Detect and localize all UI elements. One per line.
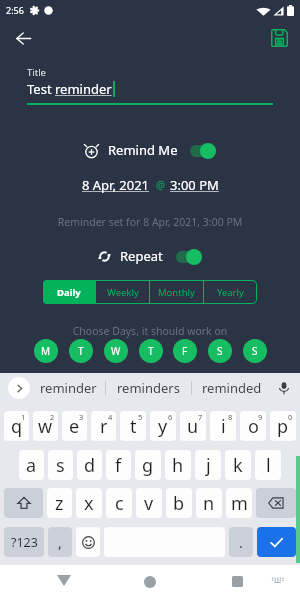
- staticText: h: [172, 453, 184, 478]
- button[interactable]: Save: [264, 23, 294, 53]
- button[interactable]: i: [210, 411, 236, 441]
- staticText: T: [148, 344, 154, 358]
- button[interactable]: m: [226, 488, 252, 518]
- button[interactable]: F: [173, 339, 197, 363]
- staticText: j: [206, 453, 211, 478]
- button[interactable]: Monthly: [150, 280, 203, 304]
- button[interactable]: T: [139, 339, 163, 363]
- staticText: Title: [27, 66, 46, 79]
- staticText: c: [115, 491, 124, 516]
- staticText: ?123: [11, 534, 38, 551]
- staticText: f: [115, 453, 122, 478]
- staticText: w: [38, 414, 53, 439]
- button[interactable]: d: [77, 450, 102, 480]
- staticText: reminder: [40, 379, 97, 397]
- button[interactable]: p: [270, 411, 296, 441]
- button[interactable]: e: [62, 411, 87, 441]
- staticText: 4: [108, 412, 113, 422]
- button[interactable]: t: [120, 411, 146, 441]
- staticText: g: [142, 453, 154, 478]
- staticText: l: [266, 453, 271, 478]
- button[interactable]: j: [195, 450, 221, 480]
- button[interactable]: 8 Apr, 2021: [82, 176, 150, 193]
- button[interactable]: reminded: [192, 373, 272, 402]
- button[interactable]: Recents: [222, 576, 252, 600]
- staticText: q: [11, 414, 23, 439]
- button[interactable]: More suggestions: [8, 377, 30, 399]
- button[interactable]: .: [229, 527, 253, 557]
- staticText: k: [233, 453, 243, 478]
- staticText: F: [182, 344, 188, 358]
- staticText: i: [221, 414, 226, 439]
- button[interactable]: g: [135, 450, 161, 480]
- button[interactable]: Back: [8, 23, 38, 53]
- button[interactable]: S: [243, 339, 267, 363]
- staticText: 1: [21, 412, 26, 422]
- button[interactable]: z: [47, 488, 72, 518]
- staticText: v: [144, 491, 154, 516]
- staticText: m: [231, 491, 248, 516]
- button[interactable]: x: [76, 488, 102, 518]
- button[interactable]: [189, 142, 216, 159]
- button[interactable]: f: [106, 450, 131, 480]
- staticText: r: [100, 414, 108, 439]
- button[interactable]: Yearly: [204, 280, 257, 304]
- button[interactable]: n: [196, 488, 222, 518]
- staticText: Remind Me: [108, 141, 178, 159]
- staticText: d: [84, 453, 96, 478]
- button[interactable]: Daily: [43, 280, 95, 304]
- button[interactable]: ?123: [4, 527, 44, 557]
- button[interactable]: ,: [48, 527, 72, 557]
- button[interactable]: W: [104, 339, 128, 363]
- button[interactable]: reminder: [32, 373, 105, 402]
- staticText: S: [252, 344, 258, 358]
- button[interactable]: S: [208, 339, 232, 363]
- staticText: S: [217, 344, 223, 358]
- button[interactable]: r: [91, 411, 116, 441]
- button[interactable]: l: [255, 450, 281, 480]
- button[interactable]: Backspace: [256, 488, 296, 518]
- staticText: n: [203, 491, 215, 516]
- button[interactable]: b: [166, 488, 192, 518]
- button[interactable]: Back: [49, 575, 79, 600]
- button[interactable]: Switch keyboard: [262, 576, 292, 600]
- button[interactable]: Enter: [257, 527, 296, 557]
- button[interactable]: u: [180, 411, 206, 441]
- button[interactable]: w: [33, 411, 58, 441]
- button[interactable]: Shift: [4, 488, 43, 518]
- staticText: reminder: [55, 80, 112, 98]
- button[interactable]: y: [150, 411, 176, 441]
- button[interactable]: Home: [135, 576, 165, 600]
- button[interactable]: k: [225, 450, 251, 480]
- button[interactable]: reminders: [106, 373, 191, 402]
- staticText: 6: [168, 412, 173, 422]
- staticText: 0: [288, 412, 293, 422]
- staticText: Test: [27, 80, 55, 98]
- button[interactable]: Weekly: [96, 280, 149, 304]
- button[interactable]: v: [136, 488, 162, 518]
- staticText: u: [187, 414, 199, 439]
- staticText: Choose Days, it should work on: [0, 324, 300, 338]
- staticText: z: [55, 491, 64, 516]
- button[interactable]: s: [48, 450, 73, 480]
- staticText: t: [130, 414, 137, 439]
- button[interactable]: Emoji: [76, 527, 100, 557]
- staticText: 5: [138, 412, 143, 422]
- button[interactable]: T: [69, 339, 93, 363]
- staticText: o: [248, 414, 259, 439]
- staticText: ,: [58, 533, 62, 552]
- button[interactable]: q: [4, 411, 29, 441]
- button[interactable]: M: [34, 339, 58, 363]
- staticText: reminders: [117, 379, 180, 397]
- button[interactable]: Voice input: [274, 378, 294, 398]
- button[interactable]: h: [165, 450, 191, 480]
- staticText: T: [78, 344, 84, 358]
- button[interactable]: a: [19, 450, 44, 480]
- button[interactable]: [175, 248, 202, 265]
- button[interactable]: c: [106, 488, 132, 518]
- staticText: y: [158, 414, 168, 439]
- staticText: x: [84, 491, 94, 516]
- button[interactable]: o: [240, 411, 266, 441]
- button[interactable]: 3:00 PM: [170, 176, 219, 193]
